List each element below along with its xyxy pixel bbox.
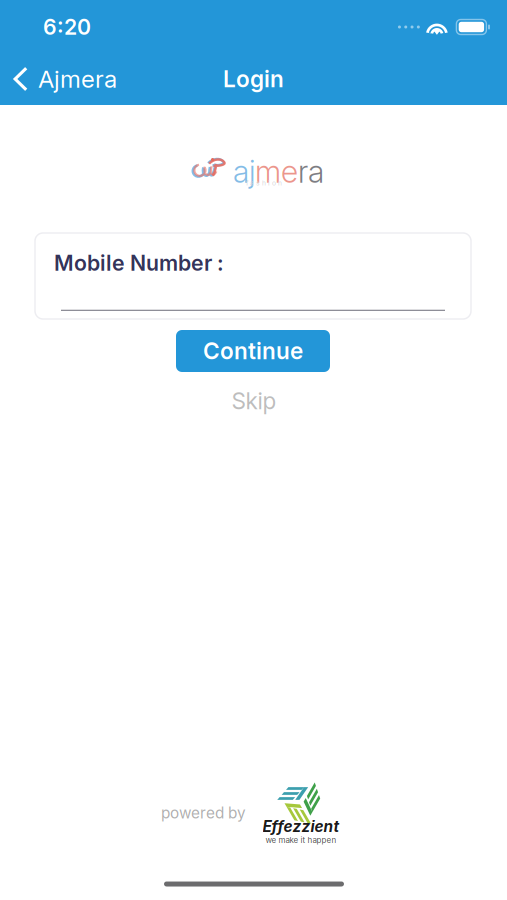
- staticText: powered by: [161, 804, 246, 822]
- staticText: Continue: [203, 337, 303, 365]
- staticText: ra: [298, 153, 324, 190]
- staticText: Skip: [231, 387, 276, 415]
- staticText: me: [255, 153, 298, 190]
- staticText: f a s h i o n: [246, 179, 282, 187]
- staticText: we make it happen: [265, 835, 336, 845]
- staticText: aj: [233, 153, 255, 190]
- button[interactable]: Ajmera: [0, 54, 129, 104]
- staticText: Effezzient: [262, 817, 339, 836]
- button[interactable]: Mobile Number :: [35, 233, 471, 319]
- staticText: Login: [223, 65, 284, 93]
- button[interactable]: Skip: [213, 385, 295, 417]
- staticText: Ajmera: [38, 64, 117, 93]
- staticText: 6:20: [43, 14, 91, 40]
- button[interactable]: Continue: [176, 330, 330, 372]
- staticText: Mobile Number :: [54, 250, 224, 276]
